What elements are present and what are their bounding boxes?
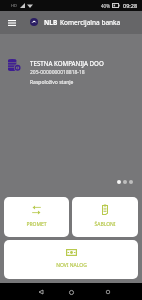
button[interactable]: ŠABLONI [72, 197, 138, 237]
staticText: 205-0000000018818-18 [30, 69, 85, 76]
button[interactable]: Menu [4, 11, 19, 34]
button[interactable]: NOVI NALOG [4, 240, 138, 279]
staticText: 09:28 [123, 2, 138, 9]
staticText: Raspoloživo stanje [30, 79, 74, 86]
staticText: PROMET [26, 221, 47, 228]
button[interactable]: PROMET [4, 197, 69, 237]
button[interactable]: Home [65, 286, 77, 298]
button[interactable]: Recents [102, 286, 114, 298]
staticText: NOVI NALOG [56, 262, 87, 269]
staticText: Komercijalna banka [60, 18, 121, 27]
staticText: NLB [44, 18, 58, 27]
staticText: TESTNA KOMPANIJA DOO [30, 59, 104, 67]
staticText: HD [11, 3, 17, 8]
staticText: 40% [101, 3, 110, 9]
button[interactable]: Back [35, 286, 47, 298]
staticText: ŠABLONI [94, 221, 116, 228]
